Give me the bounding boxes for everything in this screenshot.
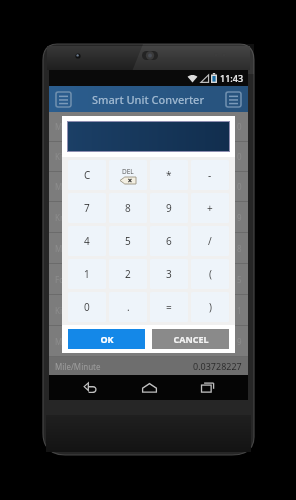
- staticText: 9: [237, 212, 242, 223]
- button[interactable]: Delete last character: [109, 160, 147, 190]
- staticText: C: [84, 168, 91, 182]
- button[interactable]: Meter/Second: [55, 112, 242, 141]
- staticText: Mile/Hour: [55, 181, 237, 192]
- staticText: 9: [237, 336, 242, 347]
- button[interactable]: Meter/Minute: [55, 326, 242, 356]
- staticText: 0: [237, 181, 242, 192]
- button[interactable]: Unit list options: [224, 90, 243, 109]
- staticText: OK: [100, 333, 114, 345]
- staticText: 7: [84, 201, 90, 215]
- staticText: 8: [237, 243, 242, 254]
- staticText: Kilometer/Hour: [55, 151, 237, 162]
- staticText: (: [209, 267, 212, 281]
- staticText: +: [207, 201, 213, 215]
- staticText: 8: [125, 201, 131, 215]
- button[interactable]: Recent apps: [190, 375, 224, 400]
- staticText: 0: [237, 151, 242, 162]
- staticText: 1: [237, 305, 242, 316]
- staticText: 9: [166, 201, 172, 215]
- button[interactable]: 1: [68, 259, 106, 289]
- staticText: 5: [125, 234, 131, 248]
- button[interactable]: Knot: [55, 202, 242, 232]
- staticText: -: [208, 168, 212, 182]
- staticText: 3: [166, 267, 172, 281]
- staticText: DEL: [122, 167, 134, 176]
- staticText: 0: [84, 300, 90, 314]
- button[interactable]: CANCEL: [152, 329, 229, 349]
- staticText: Knot: [55, 212, 237, 223]
- staticText: /: [208, 234, 212, 248]
- staticText: Mile/Minute: [55, 361, 193, 372]
- button[interactable]: 0: [68, 292, 106, 322]
- button[interactable]: Mach: [55, 233, 242, 263]
- button[interactable]: Mile/Hour: [55, 172, 242, 201]
- staticText: 2: [125, 267, 131, 281]
- staticText: *: [166, 168, 172, 182]
- staticText: Meter/Second: [55, 121, 237, 132]
- staticText: 6: [166, 234, 172, 248]
- staticText: =: [166, 300, 172, 314]
- staticText: Foot/Second: [55, 274, 237, 285]
- button[interactable]: ): [191, 292, 229, 322]
- staticText: Kilometer/Minute: [55, 305, 237, 316]
- button[interactable]: 2: [109, 259, 147, 289]
- staticText: Smart Unit Converter: [92, 92, 205, 107]
- staticText: Meter/Minute: [55, 336, 237, 347]
- button[interactable]: 4: [68, 226, 106, 256]
- staticText: ): [209, 300, 212, 314]
- button[interactable]: 5: [109, 226, 147, 256]
- button[interactable]: 3: [150, 259, 188, 289]
- staticText: 5: [237, 274, 242, 285]
- button[interactable]: Kilometer/Minute: [55, 295, 242, 325]
- button[interactable]: +: [191, 193, 229, 223]
- button[interactable]: -: [191, 160, 229, 190]
- staticText: 1: [84, 267, 90, 281]
- button[interactable]: Foot/Second: [55, 264, 242, 294]
- staticText: CANCEL: [173, 333, 209, 345]
- button[interactable]: Home: [132, 375, 166, 400]
- button[interactable]: C: [68, 160, 106, 190]
- staticText: 11:43: [220, 72, 244, 84]
- button[interactable]: 7: [68, 193, 106, 223]
- button[interactable]: Back: [73, 375, 107, 400]
- button[interactable]: /: [191, 226, 229, 256]
- staticText: .: [127, 300, 130, 314]
- button[interactable]: [68, 122, 229, 151]
- staticText: Mach: [55, 243, 237, 254]
- button[interactable]: OK: [68, 329, 145, 349]
- button[interactable]: 8: [109, 193, 147, 223]
- button[interactable]: (: [191, 259, 229, 289]
- staticText: 0.03728227: [193, 360, 242, 372]
- staticText: 4: [84, 234, 90, 248]
- button[interactable]: 9: [150, 193, 188, 223]
- button[interactable]: Open navigation menu: [54, 90, 73, 109]
- button[interactable]: *: [150, 160, 188, 190]
- staticText: 0: [237, 121, 242, 132]
- button[interactable]: Kilometer/Hour: [55, 142, 242, 171]
- button[interactable]: 6: [150, 226, 188, 256]
- button[interactable]: =: [150, 292, 188, 322]
- button[interactable]: .: [109, 292, 147, 322]
